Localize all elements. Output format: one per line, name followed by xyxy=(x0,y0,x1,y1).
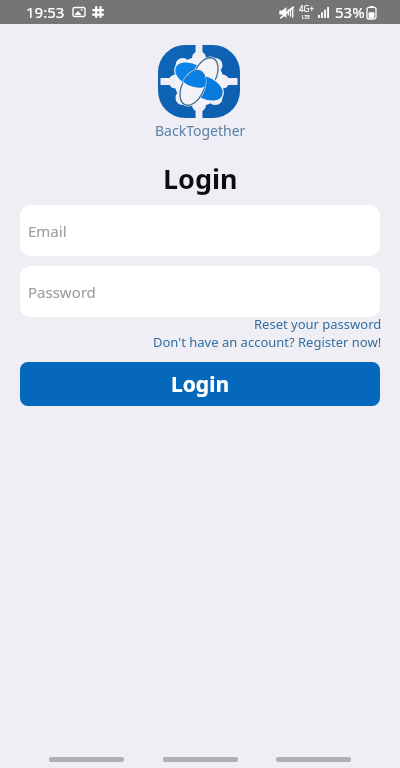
button[interactable]: Login xyxy=(20,362,380,406)
staticText: 4G+ xyxy=(299,3,314,14)
button[interactable]: Don't have an account? Register now! xyxy=(153,333,382,351)
staticText: Login xyxy=(163,160,238,197)
button[interactable]: Reset your password xyxy=(254,315,382,333)
button[interactable]: Password xyxy=(20,266,380,317)
staticText: LTE xyxy=(302,14,311,21)
button[interactable]: Navigation xyxy=(276,757,351,762)
staticText: BackTogether xyxy=(155,121,246,140)
staticText: Login xyxy=(171,370,230,399)
staticText: Password xyxy=(28,282,96,302)
button[interactable]: Navigation xyxy=(49,757,124,762)
button[interactable]: Email xyxy=(20,205,380,256)
staticText: Email xyxy=(28,221,67,241)
staticText: 53% xyxy=(335,2,365,22)
staticText: 19:53 xyxy=(26,2,65,22)
button[interactable]: Navigation xyxy=(163,757,238,762)
